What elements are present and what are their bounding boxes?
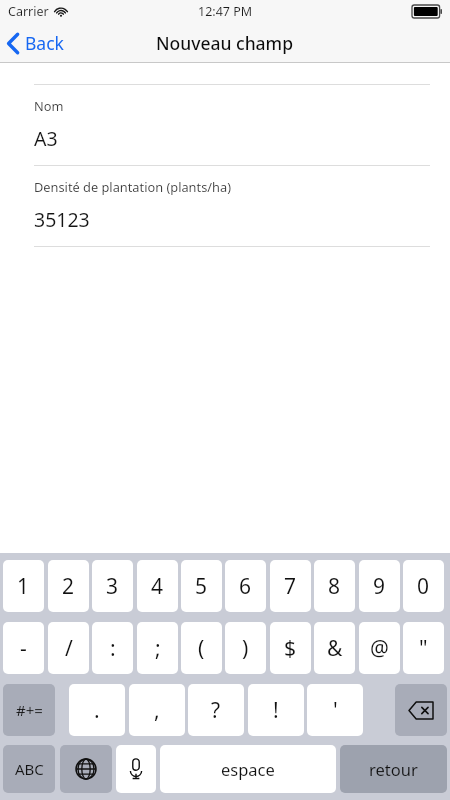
staticText: - (20, 634, 27, 663)
staticText: ! (273, 696, 279, 725)
staticText: 8 (328, 572, 341, 601)
staticText: 7 (284, 572, 297, 601)
button[interactable]: 8 (314, 560, 355, 612)
staticText: & (327, 634, 343, 663)
staticText: ? (211, 696, 221, 725)
button[interactable]: ) (225, 622, 266, 674)
button[interactable]: Back (0, 27, 76, 59)
staticText: Nom (34, 97, 64, 114)
button[interactable]: , (129, 684, 185, 736)
staticText: 12:47 PM (198, 3, 253, 20)
staticText: ' (333, 696, 338, 725)
staticText: : (110, 634, 116, 663)
button[interactable]: 0 (403, 560, 444, 612)
button[interactable]: Nom (0, 85, 450, 165)
staticText: Back (25, 31, 64, 55)
staticText: ; (155, 634, 161, 663)
staticText: ) (242, 634, 249, 663)
button[interactable]: @ (359, 622, 400, 674)
staticText: . (94, 696, 100, 725)
button[interactable]: ! (248, 684, 304, 736)
button[interactable]: / (48, 622, 89, 674)
staticText: , (154, 696, 160, 725)
staticText: 5 (195, 572, 208, 601)
button[interactable]: : (92, 622, 133, 674)
staticText: Carrier (8, 3, 49, 20)
staticText: retour (369, 758, 418, 780)
button[interactable]: #+= (3, 684, 55, 736)
button[interactable]: Backspace (395, 684, 447, 736)
staticText: ( (198, 634, 205, 663)
button[interactable]: retour (340, 745, 447, 793)
staticText: @ (370, 634, 389, 663)
button[interactable]: 7 (270, 560, 311, 612)
staticText: 3 (106, 572, 119, 601)
button[interactable]: ' (307, 684, 363, 736)
staticText: A3 (34, 125, 58, 152)
button[interactable]: & (314, 622, 355, 674)
staticText: #+= (16, 700, 43, 720)
button[interactable]: - (3, 622, 44, 674)
button[interactable]: espace (160, 745, 336, 793)
button[interactable]: $ (270, 622, 311, 674)
staticText: " (419, 634, 428, 663)
staticText: 9 (373, 572, 386, 601)
staticText: $ (284, 634, 297, 663)
button[interactable]: ABC (3, 745, 55, 793)
button[interactable]: 4 (137, 560, 178, 612)
button[interactable]: Change keyboard language (60, 745, 112, 793)
button[interactable]: . (69, 684, 125, 736)
button[interactable]: 5 (181, 560, 222, 612)
staticText: 1 (17, 572, 30, 601)
staticText: 2 (62, 572, 75, 601)
button[interactable]: ? (188, 684, 244, 736)
button[interactable]: ( (181, 622, 222, 674)
staticText: ABC (15, 759, 44, 779)
staticText: 35123 (34, 206, 90, 233)
staticText: espace (221, 758, 275, 780)
button[interactable]: " (403, 622, 444, 674)
button[interactable]: Densité de plantation (plants/ha) (0, 166, 450, 246)
staticText: 6 (239, 572, 252, 601)
staticText: Nouveau champ (156, 31, 294, 55)
button[interactable]: 3 (92, 560, 133, 612)
button[interactable]: 1 (3, 560, 44, 612)
button[interactable]: 6 (225, 560, 266, 612)
button[interactable]: 9 (359, 560, 400, 612)
staticText: / (65, 634, 73, 663)
staticText: 0 (417, 572, 430, 601)
button[interactable]: 2 (48, 560, 89, 612)
button[interactable]: Dictation (116, 745, 156, 793)
button[interactable]: ; (137, 622, 178, 674)
staticText: 4 (151, 572, 164, 601)
staticText: Densité de plantation (plants/ha) (34, 178, 231, 195)
